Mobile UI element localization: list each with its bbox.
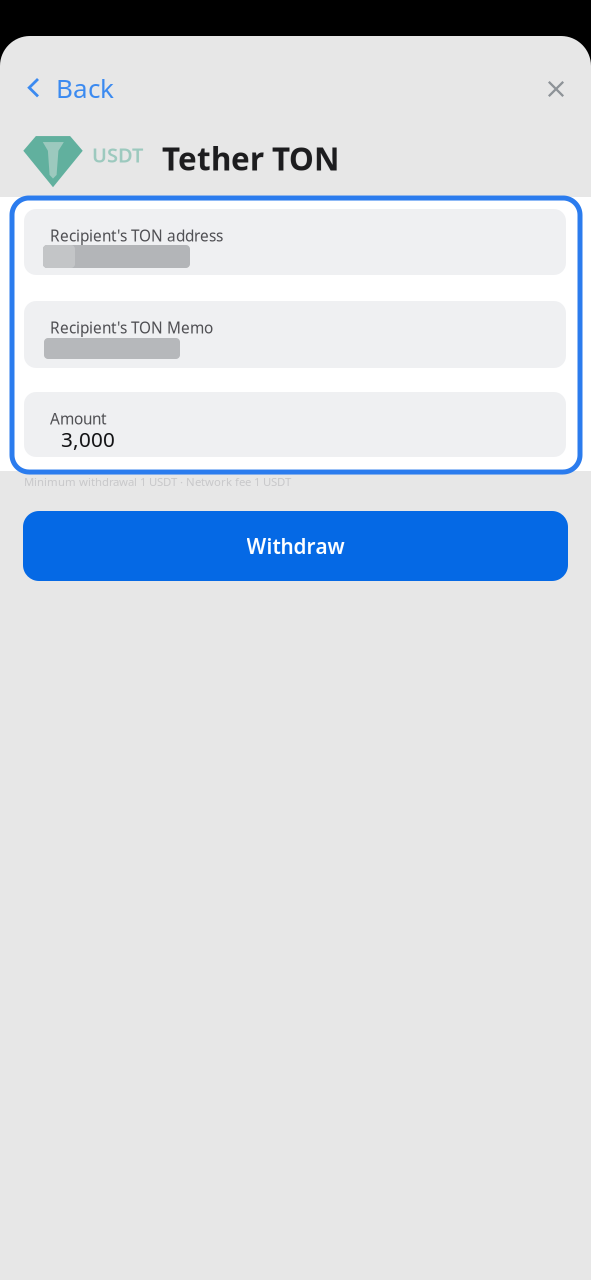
staticText: Recipient's TON Memo: [50, 317, 213, 338]
staticText: 3,000: [61, 425, 115, 453]
staticText: Amount: [50, 408, 107, 429]
button[interactable]: Close: [532, 65, 579, 112]
staticText: Minimum withdrawal 1 USDT · Network fee …: [24, 474, 291, 489]
staticText: Tether TON: [162, 137, 339, 180]
button[interactable]: Back: [0, 65, 145, 111]
staticText: Back: [56, 70, 114, 106]
staticText: Recipient's TON address: [50, 225, 223, 246]
button[interactable]: Withdraw: [23, 511, 568, 581]
staticText: USDT: [92, 141, 143, 168]
staticText: Withdraw: [246, 532, 344, 560]
